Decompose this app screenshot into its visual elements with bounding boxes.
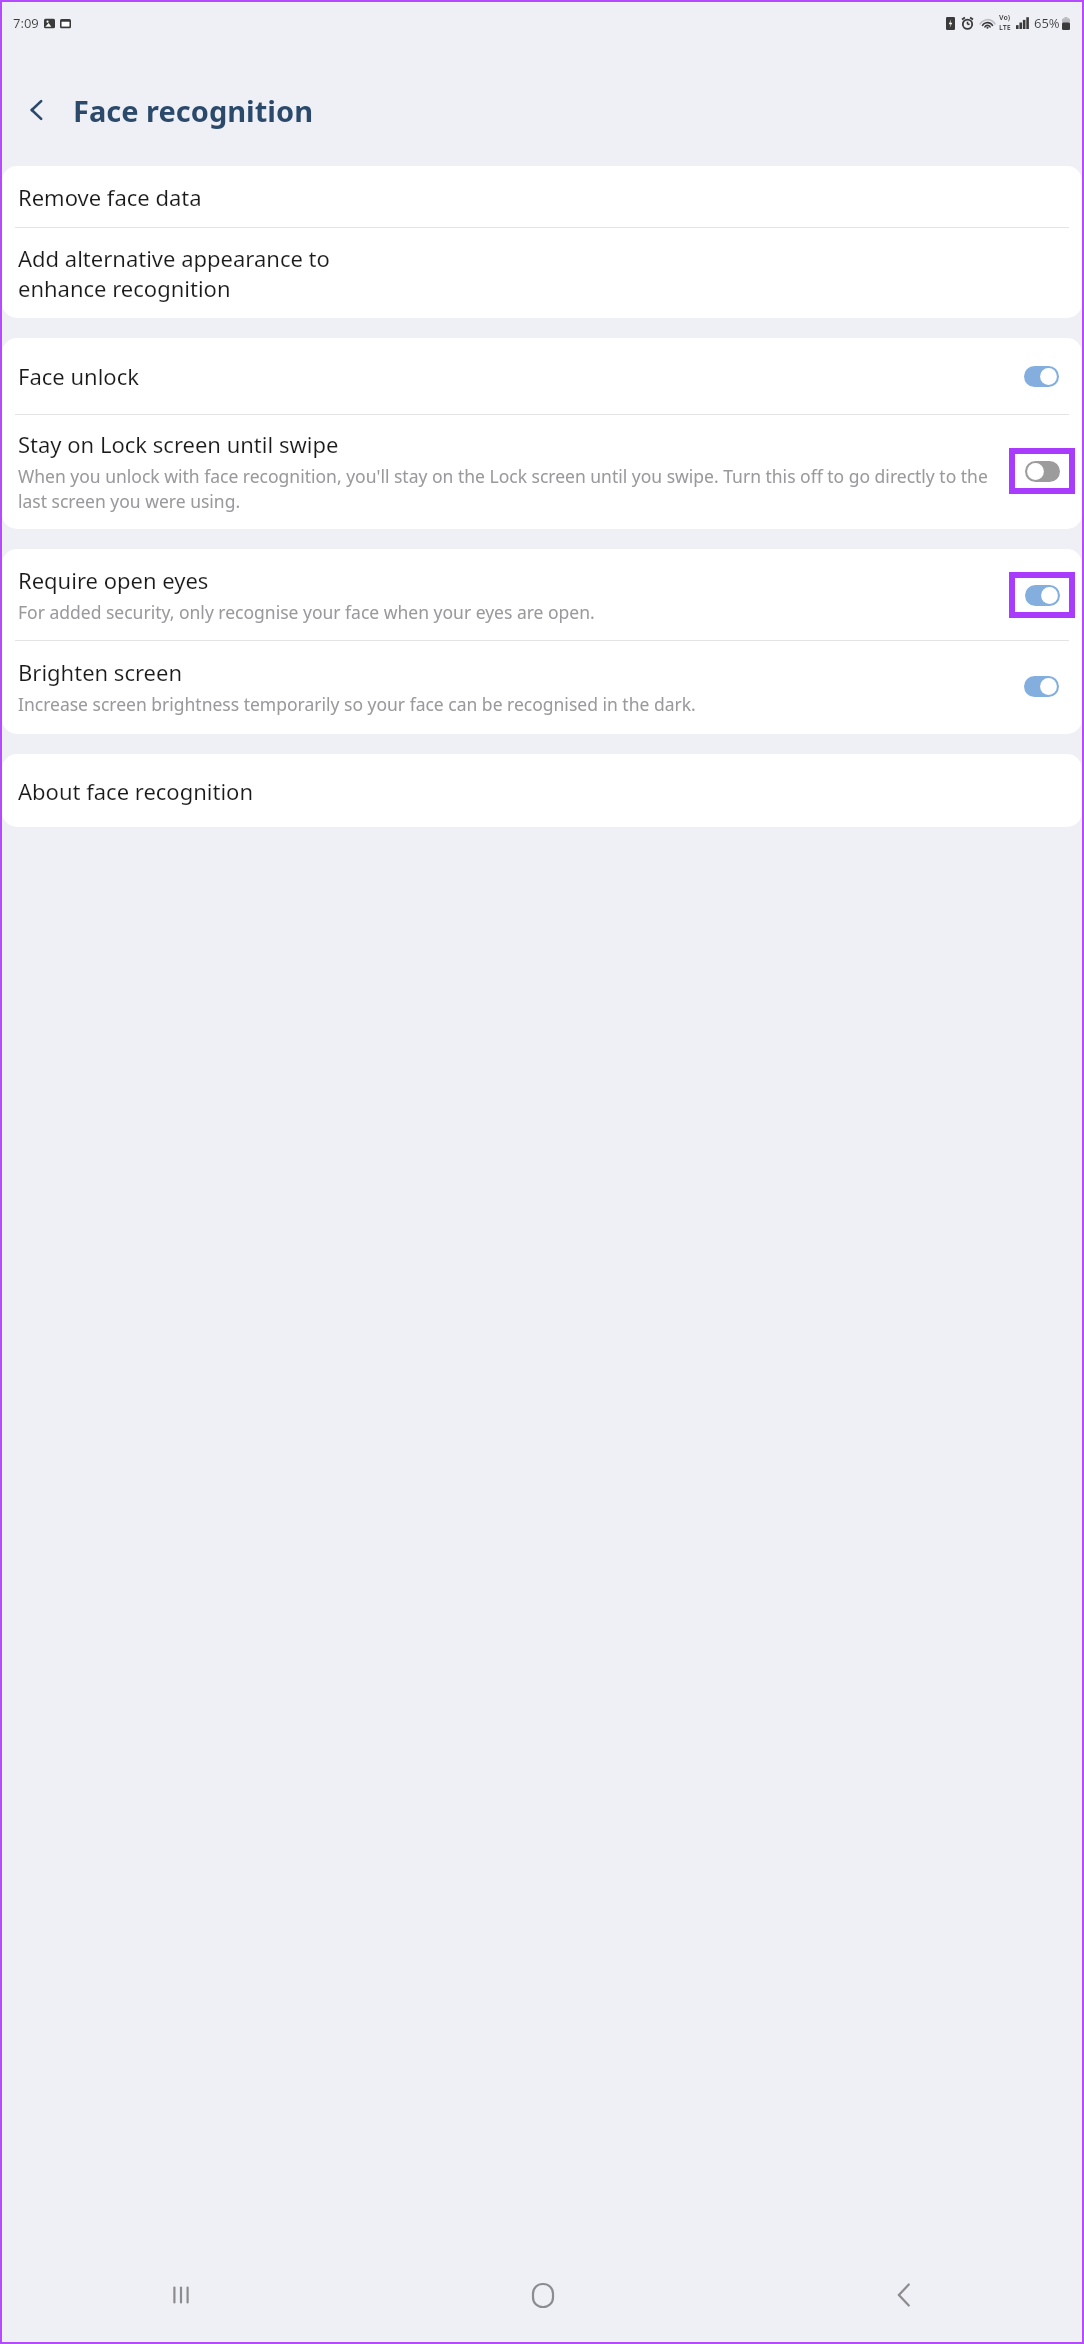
staticText: When you unlock with face recognition, y… [18,464,1003,513]
button[interactable]: Back [10,83,64,137]
staticText: Add alternative appearance to enhance re… [18,243,330,303]
button[interactable]: About face recognition [2,754,1082,827]
button[interactable]: Brighten screen [2,641,1082,734]
staticText: Face recognition [73,91,313,130]
button[interactable]: Stay on Lock screen until swipe [2,415,1082,529]
staticText: 65% [1034,14,1060,32]
staticText: For added security, only recognise your … [18,600,595,624]
staticText: LTE [999,23,1011,33]
button[interactable]: Toggle on [1024,676,1059,697]
staticText: Vo) [999,13,1011,23]
button[interactable]: Toggle off [1025,461,1060,482]
staticText: About face recognition [18,776,254,806]
button[interactable]: Toggle on [1025,585,1060,606]
button[interactable]: Remove face data [2,166,1082,227]
staticText: 7:09 [13,14,39,32]
staticText: Increase screen brightness temporarily s… [18,692,696,716]
staticText: Stay on Lock screen until swipe [18,429,339,459]
button[interactable]: Face unlock [2,338,1082,414]
staticText: Require open eyes [18,565,209,595]
button[interactable]: Add alternative appearance to enhance re… [2,228,1082,318]
button[interactable]: Back [723,2246,1084,2344]
button[interactable]: Recent apps [0,2246,362,2344]
staticText: Brighten screen [18,657,183,687]
staticText: Remove face data [18,182,202,212]
button[interactable]: Home [362,2246,723,2344]
staticText: Face unlock [18,361,1024,391]
button[interactable]: Toggle on [1024,366,1059,387]
button[interactable]: Require open eyes [2,549,1082,640]
